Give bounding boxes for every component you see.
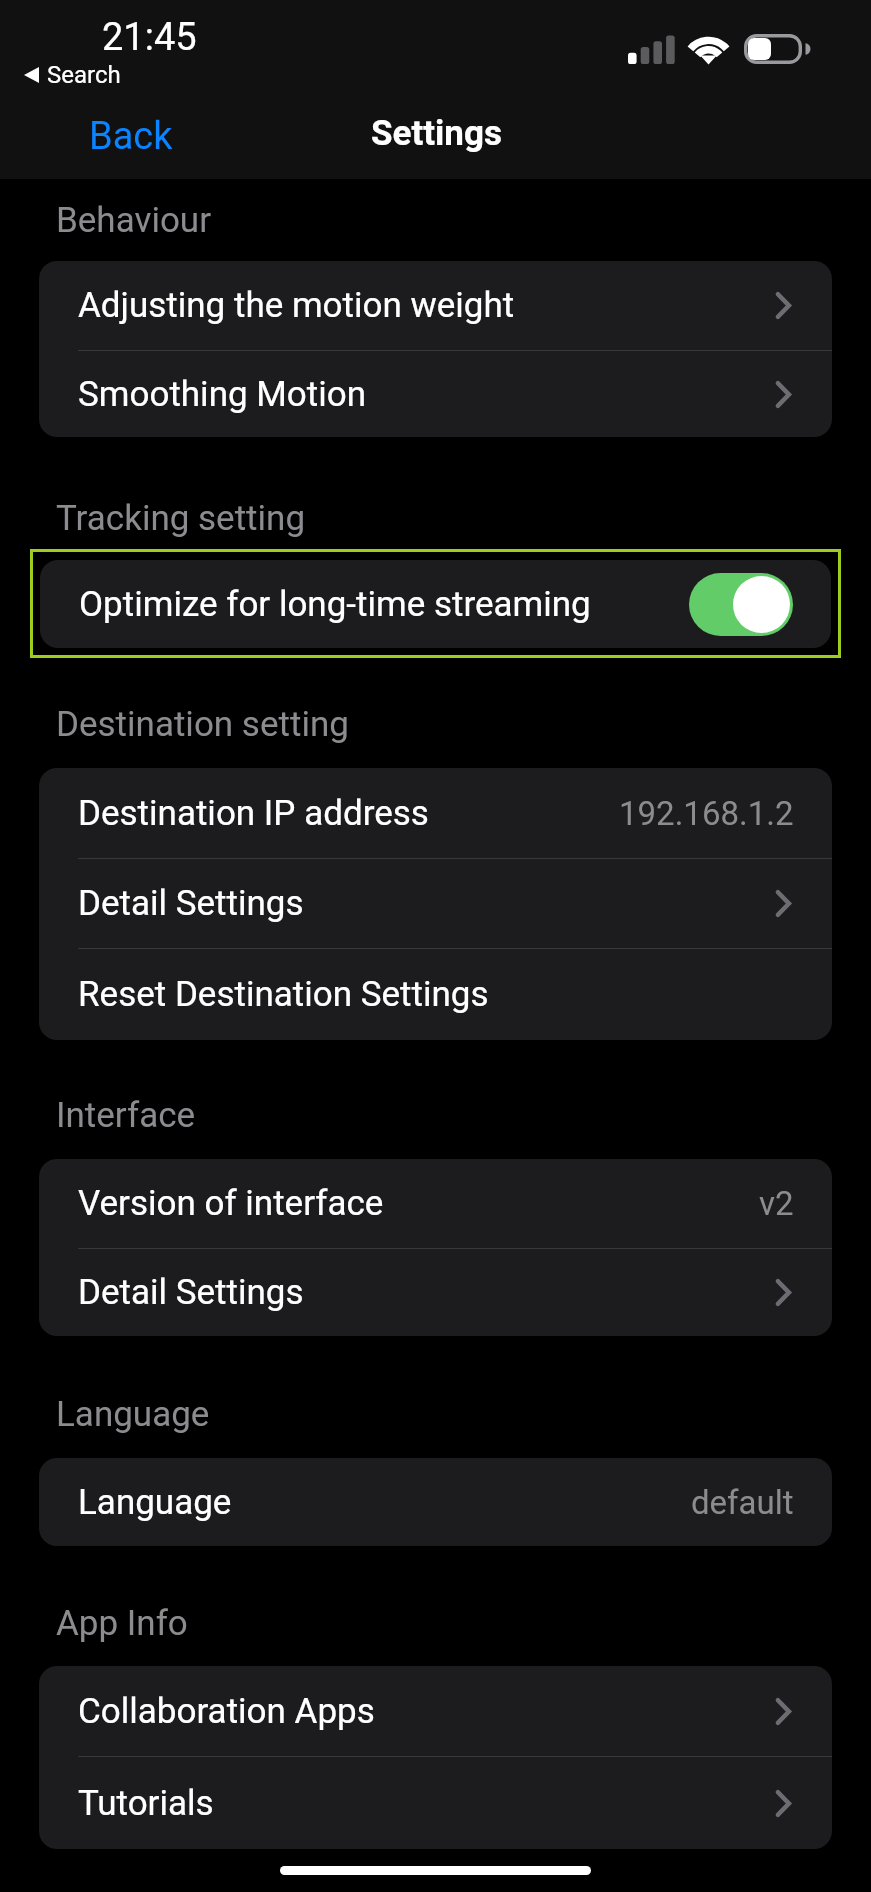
staticText: Settings	[371, 113, 502, 154]
staticText: 192.168.1.2	[619, 794, 794, 833]
other: Open	[776, 1280, 790, 1305]
button[interactable]: Optimize for long-time streaming, on	[689, 573, 793, 636]
staticText: Detail Settings	[78, 883, 304, 924]
staticText: Language	[56, 1394, 210, 1435]
other: Open	[776, 293, 790, 318]
staticText: default	[691, 1483, 794, 1522]
staticText: v2	[759, 1184, 794, 1223]
button[interactable]: Reset Destination Settings	[39, 949, 832, 1040]
staticText: Back	[89, 114, 173, 159]
staticText: Tracking setting	[56, 498, 306, 539]
staticText: Smoothing Motion	[78, 374, 367, 415]
button[interactable]: Tutorials	[39, 1757, 832, 1849]
other: Open	[776, 891, 790, 916]
staticText: Reset Destination Settings	[78, 974, 489, 1015]
button[interactable]: Adjusting the motion weight	[39, 261, 832, 350]
button[interactable]: Destination IP address	[39, 768, 832, 858]
other: Open	[776, 1699, 790, 1724]
staticText: Collaboration Apps	[78, 1691, 375, 1732]
staticText: Detail Settings	[78, 1272, 304, 1313]
button[interactable]: Optimize for long-time streaming	[40, 560, 831, 648]
staticText: Version of interface	[78, 1183, 384, 1224]
button[interactable]: Language	[39, 1458, 832, 1546]
other: Open	[776, 382, 790, 407]
staticText: App Info	[56, 1603, 188, 1644]
staticText: Behaviour	[56, 200, 212, 241]
button[interactable]: Collaboration Apps	[39, 1666, 832, 1756]
staticText: 21:45	[102, 15, 197, 60]
staticText: Destination IP address	[78, 793, 429, 834]
staticText: Language	[78, 1482, 232, 1523]
staticText: Destination setting	[56, 704, 349, 745]
staticText: Adjusting the motion weight	[78, 285, 515, 326]
button[interactable]: Version of interface	[39, 1159, 832, 1248]
button[interactable]: Back	[73, 108, 189, 165]
staticText: Optimize for long-time streaming	[79, 584, 591, 625]
other: Open	[776, 1791, 790, 1816]
staticText: Interface	[56, 1095, 196, 1136]
button[interactable]: Detail Settings	[39, 1249, 832, 1336]
staticText: Search	[47, 61, 121, 89]
button[interactable]: Smoothing Motion	[39, 351, 832, 437]
staticText: Tutorials	[78, 1783, 214, 1824]
button[interactable]: Detail Settings	[39, 859, 832, 948]
